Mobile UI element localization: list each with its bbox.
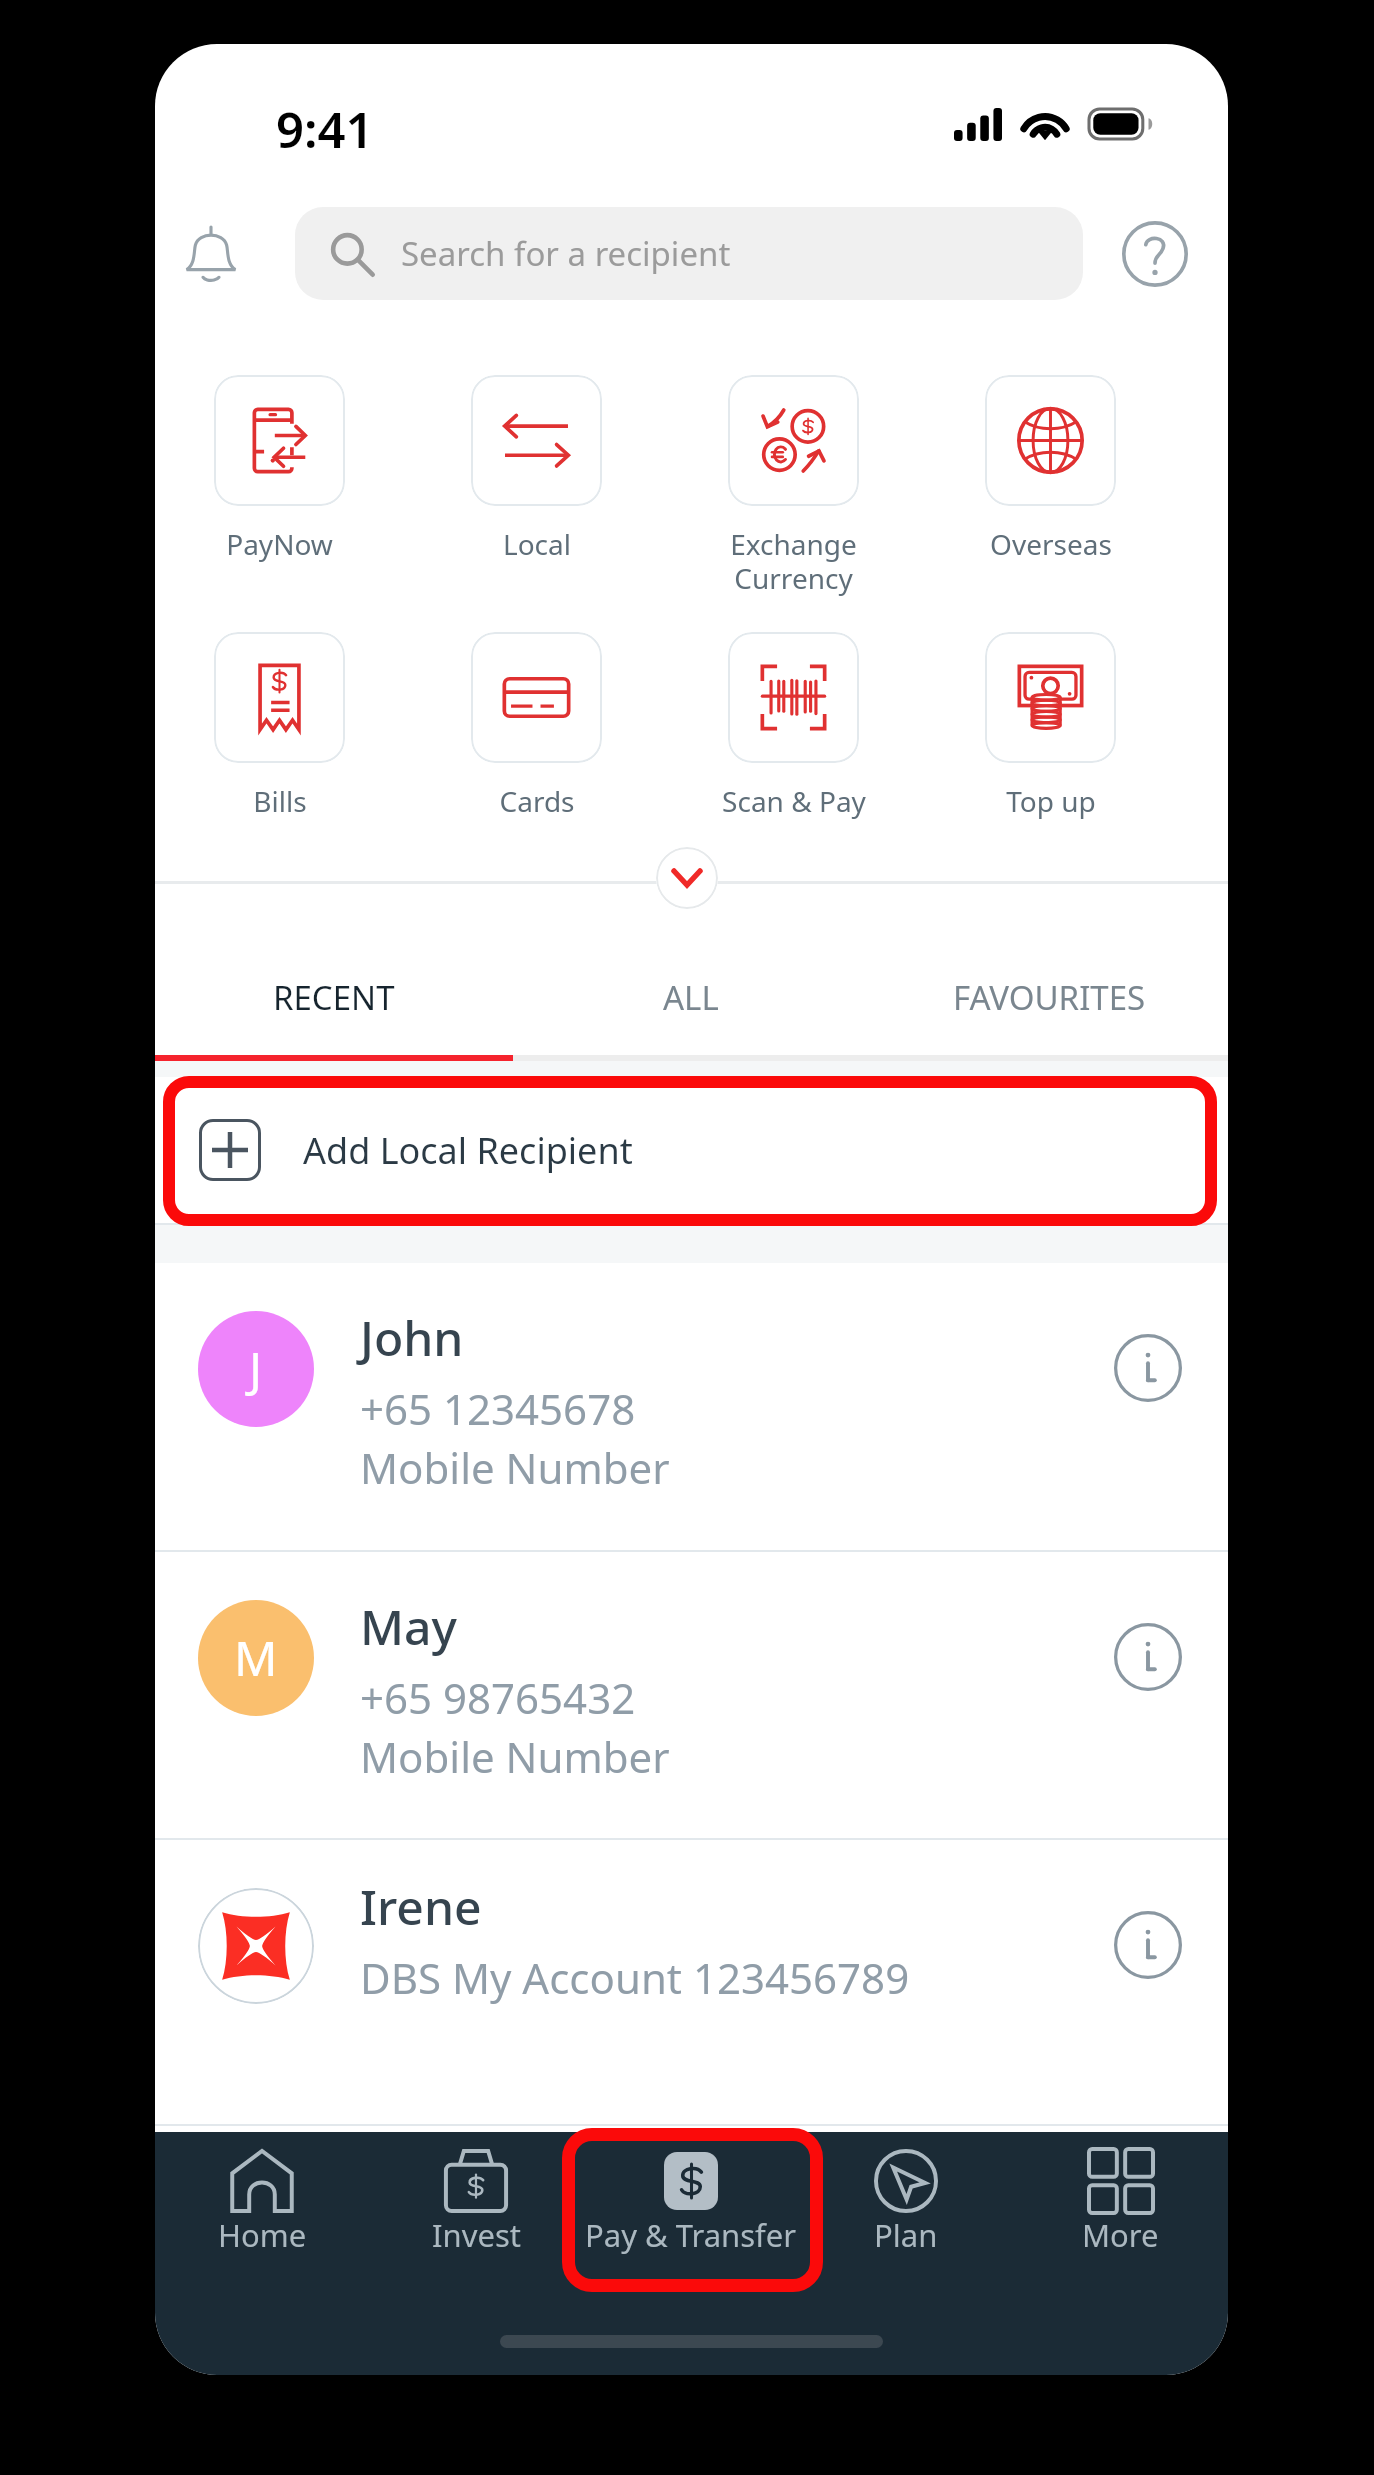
staticText: RECENT [273,975,395,1020]
staticText: More [1082,2214,1159,2256]
button[interactable]: Info [1114,1623,1182,1691]
button[interactable]: Cards [408,632,665,820]
staticText: Bills [253,782,307,820]
button[interactable]: Info [1114,1911,1182,1979]
button[interactable]: Notifications [163,206,259,302]
button[interactable]: Help [1107,206,1203,302]
staticText: Mobile Number [360,1728,670,1785]
button[interactable]: RECENT [155,941,512,1053]
button[interactable]: Add Local Recipient [155,1077,1228,1223]
button[interactable]: Bills [155,632,408,820]
staticText: PayNow [226,525,333,563]
button[interactable]: M [155,1552,1228,1838]
button[interactable]: Home [155,2132,369,2302]
staticText: Home [218,2214,307,2256]
staticText: May [360,1594,457,1659]
button[interactable]: More [1013,2132,1228,2302]
staticText: John [360,1305,464,1370]
button[interactable]: Info [1114,1334,1182,1402]
button[interactable]: Pay & Transfer [583,2132,798,2302]
staticText: +65 98765432 [360,1669,636,1726]
staticText: Invest [432,2214,521,2256]
staticText: J [249,1336,263,1401]
staticText: 9:41 [276,96,374,163]
staticText: Local [503,525,571,563]
button[interactable]: Exchange Currency [665,375,922,597]
staticText: Pay & Transfer [585,2214,796,2256]
staticText: Exchange Currency [730,525,857,597]
button[interactable]: ALL [512,941,870,1053]
button[interactable]: PayNow [155,375,408,563]
button[interactable]: Plan [798,2132,1013,2302]
staticText: +65 12345678 [360,1380,636,1437]
staticText: Search for a recipient [401,231,731,276]
staticText: Cards [499,782,575,820]
button[interactable]: Overseas [922,375,1179,563]
staticText: Scan & Pay [722,782,866,820]
button[interactable]: Show more [656,847,718,909]
staticText: DBS My Account 123456789 [360,1949,910,2006]
button[interactable]: Invest [369,2132,583,2302]
staticText: Irene [360,1874,482,1939]
staticText: Top up [1006,782,1096,820]
staticText: Plan [874,2214,938,2256]
button[interactable]: Top up [922,632,1179,820]
staticText: Add Local Recipient [303,1126,633,1175]
staticText: Mobile Number [360,1439,670,1496]
button[interactable]: Irene [155,1840,1228,2098]
button[interactable]: J [155,1263,1228,1550]
staticText: ALL [663,975,719,1020]
button[interactable]: Search for a recipient [295,207,1083,300]
button[interactable]: Local [408,375,665,563]
staticText: FAVOURITES [953,975,1146,1020]
button[interactable]: FAVOURITES [870,941,1228,1053]
staticText: Overseas [990,525,1112,563]
staticText: M [234,1625,278,1690]
button[interactable]: Scan & Pay [665,632,922,820]
